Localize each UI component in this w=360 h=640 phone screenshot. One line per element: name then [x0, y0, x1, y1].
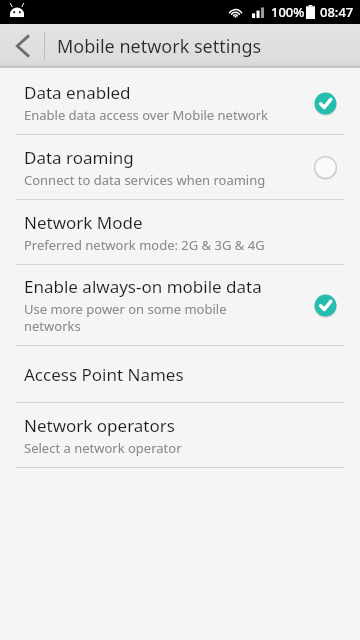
staticText: Network Mode	[24, 211, 143, 234]
button[interactable]: Data enabled	[0, 71, 360, 134]
staticText: Enable always-on mobile data	[24, 275, 262, 298]
staticText: Use more power on some mobile networks	[24, 300, 227, 335]
staticText: Data roaming	[24, 146, 134, 169]
staticText: Enable data access over Mobile network	[24, 106, 269, 124]
button[interactable]: Back	[0, 24, 44, 68]
button[interactable]: Access Point Names	[0, 346, 360, 402]
button[interactable]: Disabled	[310, 152, 340, 182]
staticText: Preferred network mode: 2G & 3G & 4G	[24, 236, 265, 254]
button[interactable]: Network operators	[0, 403, 360, 467]
staticText: Access Point Names	[24, 363, 184, 386]
staticText: Select a network operator	[24, 439, 182, 457]
staticText: Data enabled	[24, 81, 131, 104]
staticText: Network operators	[24, 414, 175, 437]
button[interactable]: Enable always-on mobile data	[0, 265, 360, 345]
button[interactable]: Data roaming	[0, 135, 360, 199]
staticText: 08:47	[320, 3, 354, 21]
staticText: 100%	[271, 3, 305, 21]
button[interactable]: Network Mode	[0, 200, 360, 264]
button[interactable]: Enabled	[310, 290, 340, 320]
staticText: Mobile network settings	[57, 34, 262, 59]
button[interactable]: Enabled	[310, 88, 340, 118]
staticText: Connect to data services when roaming	[24, 171, 266, 189]
